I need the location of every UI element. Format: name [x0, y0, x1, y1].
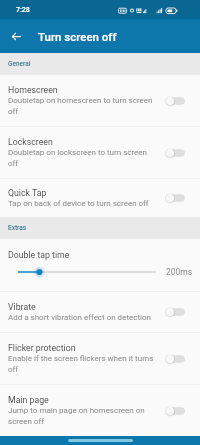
staticText: Doubletap on lockscreen to turn screen o… [8, 147, 155, 169]
staticText: Double tap time [8, 249, 70, 260]
staticText: Tap on back of device to turn screen off [8, 198, 149, 209]
staticText: Extras [8, 224, 27, 232]
button[interactable]: Navigate up [4, 24, 29, 49]
staticText: Turn screen off [38, 30, 117, 43]
staticText: Quick Tap [8, 187, 47, 198]
staticText: 200ms [166, 267, 193, 277]
button[interactable]: Homescreen [0, 75, 200, 126]
staticText: Vibrate [8, 301, 36, 312]
staticText: Doubletap on homescreen to turn screen o… [8, 95, 155, 117]
staticText: Lockscreen [8, 136, 53, 147]
button[interactable]: Vibrate [0, 292, 200, 332]
button[interactable]: Quick Tap [0, 179, 200, 217]
staticText: Jump to main page on homescreen on scree… [8, 405, 155, 427]
staticText: 7:28 [16, 6, 30, 14]
button[interactable]: Main page [0, 385, 200, 436]
staticText: Enable if the screen flickers when it tu… [8, 353, 155, 375]
button[interactable]: Flicker protection [0, 333, 200, 384]
staticText: General [8, 60, 31, 68]
staticText: Homescreen [8, 84, 58, 95]
staticText: Add a short vibration effect on detectio… [8, 312, 151, 323]
button[interactable]: Lockscreen [0, 127, 200, 178]
button[interactable]: Double tap time [0, 239, 200, 291]
staticText: Main page [8, 394, 49, 405]
staticText: Flicker protection [8, 342, 76, 353]
